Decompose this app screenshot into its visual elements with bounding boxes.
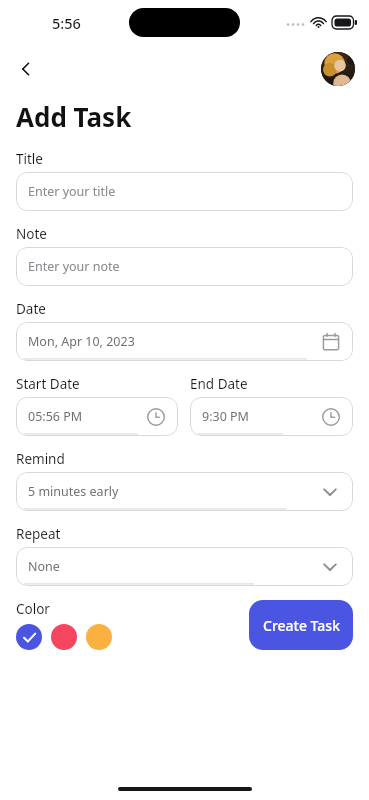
staticText: Start Date <box>16 375 80 393</box>
button[interactable]: Create Task <box>249 600 353 650</box>
button[interactable]: Select red colour <box>51 624 77 650</box>
staticText: Enter your note <box>28 258 342 275</box>
button[interactable]: Enter your note <box>16 247 353 286</box>
button[interactable]: Expand options <box>318 480 342 504</box>
button[interactable]: Mon, Apr 10, 2023 <box>16 322 353 361</box>
button[interactable]: Pick date <box>320 331 342 353</box>
staticText: Date <box>16 300 46 318</box>
staticText: 5 minutes early <box>28 483 318 500</box>
staticText: 05:56 PM <box>28 408 145 425</box>
button[interactable]: Profile <box>321 52 355 86</box>
staticText: Enter your title <box>28 183 342 200</box>
staticText: Mon, Apr 10, 2023 <box>28 333 320 350</box>
staticText: Remind <box>16 450 65 468</box>
button[interactable]: None <box>16 547 353 586</box>
button[interactable]: 9:30 PM <box>190 397 353 436</box>
button[interactable]: Enter your title <box>16 172 353 211</box>
button[interactable]: Expand options <box>318 555 342 579</box>
staticText: Add Task <box>16 99 132 134</box>
button[interactable]: 05:56 PM <box>16 397 178 436</box>
button[interactable]: Pick time <box>320 406 342 428</box>
staticText: Repeat <box>16 525 61 543</box>
staticText: End Date <box>190 375 248 393</box>
staticText: Note <box>16 225 47 243</box>
button[interactable]: Pick time <box>145 406 167 428</box>
button[interactable]: Back <box>8 51 44 87</box>
button[interactable]: 5 minutes early <box>16 472 353 511</box>
staticText: Create Task <box>263 616 340 635</box>
staticText: 9:30 PM <box>202 408 320 425</box>
staticText: 5:56 <box>52 13 81 33</box>
staticText: None <box>28 558 318 575</box>
staticText: Title <box>16 150 43 168</box>
staticText: Color <box>16 600 50 618</box>
button[interactable]: Select amber colour <box>86 624 112 650</box>
button[interactable]: Select blue colour <box>16 624 42 650</box>
